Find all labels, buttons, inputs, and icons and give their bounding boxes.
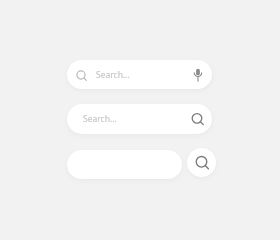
staticText: Search... xyxy=(83,113,117,125)
staticText: Search... xyxy=(96,69,130,81)
button[interactable]: Search xyxy=(187,148,216,177)
button[interactable]: Search xyxy=(189,111,205,127)
button[interactable] xyxy=(67,150,182,179)
button[interactable]: Search... xyxy=(67,60,212,89)
button[interactable]: Search... xyxy=(67,104,212,134)
button[interactable]: Voice search xyxy=(190,67,206,83)
